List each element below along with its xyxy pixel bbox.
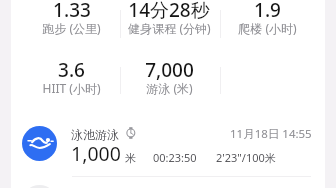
staticText: 游泳 (米) xyxy=(146,80,193,96)
button[interactable] xyxy=(22,185,57,188)
staticText: 3.6 xyxy=(58,57,85,83)
staticText: HIIT (小时) xyxy=(42,80,101,96)
staticText: 7,000 xyxy=(145,57,194,83)
staticText: 1.33 xyxy=(53,0,91,23)
staticText: 爬楼 (小时) xyxy=(238,20,297,36)
staticText: 1.9 xyxy=(254,0,281,23)
staticText: 米 xyxy=(125,151,136,165)
staticText: 14分28秒 xyxy=(128,0,210,23)
staticText: 11月18日 14:55 xyxy=(230,126,312,142)
staticText: 00:23:50 xyxy=(153,150,197,165)
staticText: 跑步 (公里) xyxy=(42,20,101,36)
button[interactable]: 泳池游泳 xyxy=(11,126,325,169)
staticText: 2'23"/100米 xyxy=(216,150,276,165)
staticText: 健身课程 (分钟) xyxy=(128,20,211,36)
staticText: 泳池游泳 xyxy=(71,127,119,142)
staticText: 1,000 xyxy=(71,140,121,167)
